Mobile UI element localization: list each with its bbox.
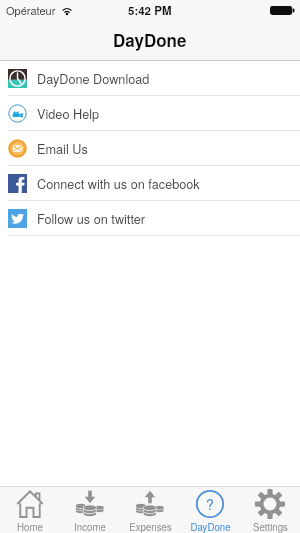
staticText: Settings — [253, 520, 288, 533]
staticText: Email Us — [37, 139, 88, 157]
button[interactable]: Home — [0, 487, 60, 533]
staticText: DayDone Download — [37, 69, 150, 87]
button[interactable]: Income — [60, 487, 120, 533]
staticText: 5:42 PM — [128, 2, 172, 18]
button[interactable]: ? — [180, 487, 240, 533]
button[interactable]: Settings — [240, 487, 300, 533]
staticText: Home — [17, 520, 43, 533]
button[interactable]: Follow us on twitter — [0, 201, 300, 235]
staticText: Opérateur — [6, 2, 56, 18]
button[interactable]: Expenses — [120, 487, 180, 533]
staticText: Follow us on twitter — [37, 209, 146, 227]
staticText: DayDone — [190, 520, 231, 533]
staticText: Connect with us on facebook — [37, 174, 200, 192]
button[interactable]: Video Help — [0, 96, 300, 130]
button[interactable]: DayDone Download — [0, 61, 300, 95]
button[interactable]: Email Us — [0, 131, 300, 165]
staticText: ? — [206, 494, 214, 514]
staticText: DayDone — [113, 28, 187, 52]
staticText: Video Help — [37, 104, 100, 122]
staticText: Income — [74, 520, 106, 533]
button[interactable]: Connect with us on facebook — [0, 166, 300, 200]
staticText: Expenses — [129, 520, 172, 533]
